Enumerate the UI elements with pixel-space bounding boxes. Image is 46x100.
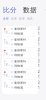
- button[interactable]: Search: [45, 6, 46, 14]
- staticText: 曼彻斯特: [14, 27, 26, 30]
- staticText: 足球: [11, 17, 17, 20]
- staticText: 曼彻斯特: [14, 49, 26, 52]
- button[interactable]: 比分: [3, 6, 17, 14]
- staticText: 1: [38, 43, 40, 46]
- staticText: 曼彻斯特: [14, 60, 26, 63]
- staticText: 电竞: [27, 17, 33, 20]
- staticText: 利物浦: [14, 43, 23, 46]
- staticText: 18:00: [4, 31, 10, 34]
- staticText: 1: [38, 64, 40, 68]
- button[interactable]: 18:00: [2, 80, 38, 90]
- staticText: 数据: [23, 6, 37, 14]
- staticText: 利物浦: [14, 86, 23, 89]
- button[interactable]: 18:00: [2, 69, 38, 80]
- staticText: 18:00: [4, 63, 10, 67]
- staticText: 1: [38, 32, 40, 35]
- staticText: 2: [38, 70, 40, 74]
- staticText: 曼彻斯特: [14, 38, 26, 41]
- staticText: 18:00: [4, 52, 10, 56]
- staticText: 利物浦: [14, 53, 23, 57]
- staticText: 18:00: [4, 85, 10, 88]
- staticText: 2: [38, 49, 40, 52]
- staticText: 2: [38, 81, 40, 84]
- button[interactable]: 数据: [23, 6, 37, 14]
- staticText: 利物浦: [14, 32, 23, 35]
- staticText: 曼彻斯特: [14, 81, 26, 84]
- staticText: 利物浦: [14, 64, 23, 68]
- staticText: 曼彻斯特: [14, 70, 26, 74]
- staticText: 18:00: [4, 41, 10, 45]
- staticText: 1: [38, 53, 40, 57]
- staticText: 全部: [3, 17, 9, 20]
- staticText: 18:00: [4, 74, 10, 77]
- button[interactable]: 18:00: [2, 48, 38, 58]
- staticText: 比分: [3, 6, 17, 14]
- staticText: 2: [38, 27, 40, 30]
- staticText: 利物浦: [14, 75, 23, 78]
- button[interactable]: 18:00: [2, 37, 38, 47]
- button[interactable]: 18:00: [2, 26, 38, 36]
- staticText: 1: [38, 75, 40, 79]
- staticText: 2: [38, 38, 40, 41]
- staticText: 1: [38, 86, 40, 89]
- staticText: 2: [38, 59, 40, 63]
- staticText: 篮球: [19, 17, 25, 20]
- button[interactable]: 18:00: [2, 58, 38, 69]
